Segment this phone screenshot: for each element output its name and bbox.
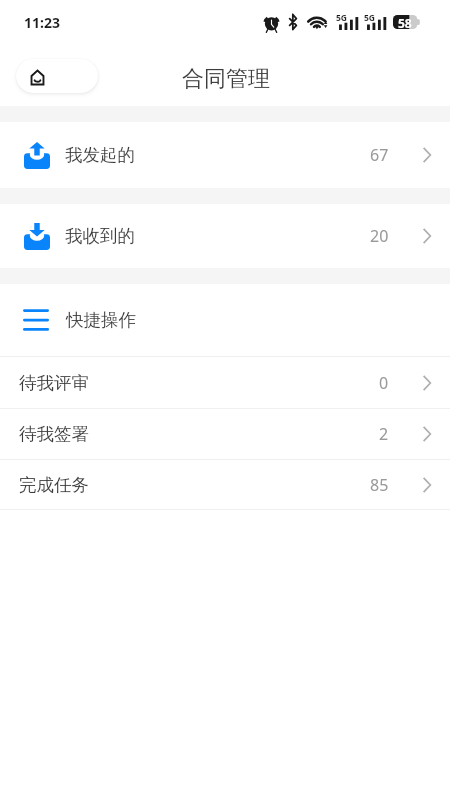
staticText: 2: [379, 423, 389, 445]
staticText: 我发起的: [65, 144, 135, 166]
staticText: 完成任务: [19, 474, 89, 496]
staticText: 合同管理: [182, 65, 270, 93]
button[interactable]: Home: [16, 59, 98, 93]
staticText: 快捷操作: [66, 309, 136, 331]
staticText: 待我评审: [19, 372, 89, 394]
button[interactable]: 我发起的: [0, 122, 450, 188]
staticText: 67: [370, 144, 389, 166]
staticText: 我收到的: [65, 225, 135, 247]
staticText: 20: [370, 225, 389, 247]
button[interactable]: 快捷操作: [0, 284, 450, 356]
button[interactable]: 待我签署: [0, 409, 450, 459]
staticText: 0: [379, 372, 389, 394]
staticText: 5G: [364, 12, 376, 24]
staticText: 58: [398, 15, 412, 29]
staticText: 85: [370, 474, 389, 496]
staticText: 待我签署: [19, 423, 89, 445]
button[interactable]: 完成任务: [0, 460, 450, 509]
staticText: 11:23: [24, 13, 60, 32]
button[interactable]: 我收到的: [0, 204, 450, 268]
staticText: 5G: [336, 12, 348, 24]
button[interactable]: 待我评审: [0, 357, 450, 408]
